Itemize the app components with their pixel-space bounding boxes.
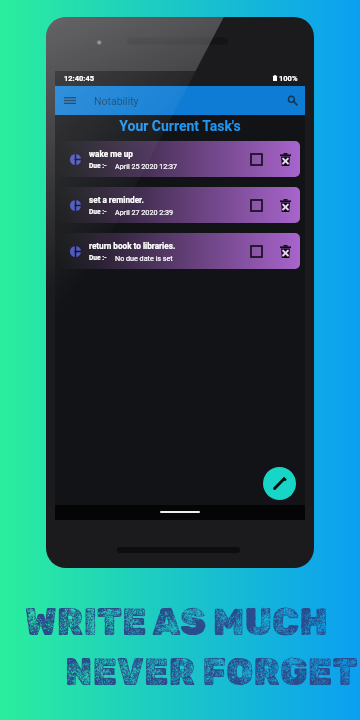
staticText: NEVER FORGET: [65, 650, 358, 694]
staticText: Notability: [94, 95, 139, 107]
button[interactable]: Delete task: [275, 233, 295, 269]
button[interactable]: Search: [280, 86, 305, 115]
button[interactable]: Delete task: [275, 141, 295, 177]
staticText: WRITE AS MUCH: [25, 600, 328, 644]
staticText: return book to libraries.: [89, 241, 176, 251]
button[interactable]: Mark task done: [246, 141, 266, 177]
staticText: set a reminder.: [89, 195, 144, 205]
button[interactable]: Delete task: [275, 187, 295, 223]
button[interactable]: Open navigation drawer: [59, 86, 81, 115]
button[interactable]: Mark task done: [246, 187, 266, 223]
staticText: April 25 2020 12:37: [115, 162, 178, 170]
staticText: 12:40:45: [64, 74, 95, 83]
staticText: No due date is set: [115, 254, 173, 262]
staticText: Due :-: [89, 254, 107, 262]
button[interactable]: set a reminder.: [60, 187, 300, 223]
staticText: wake me up: [89, 149, 133, 159]
staticText: 100%: [279, 74, 298, 83]
staticText: Your Current Task's: [55, 118, 305, 134]
staticText: April 27 2020 2:39: [115, 208, 174, 216]
button[interactable]: wake me up: [60, 141, 300, 177]
button[interactable]: Mark task done: [246, 233, 266, 269]
button[interactable]: return book to libraries.: [60, 233, 300, 269]
button[interactable]: Add task: [263, 467, 296, 500]
staticText: Due :-: [89, 162, 107, 170]
staticText: Due :-: [89, 208, 107, 216]
